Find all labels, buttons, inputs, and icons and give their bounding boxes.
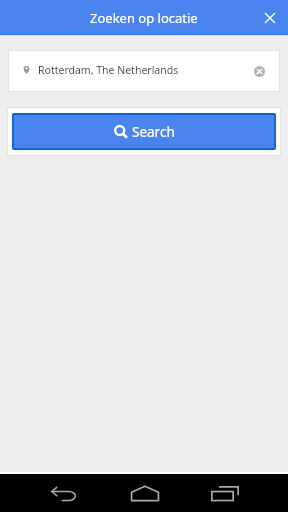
button[interactable]: Recent apps [192,474,258,512]
staticText: Rotterdam, The Netherlands [38,63,179,77]
staticText: Search [132,123,175,141]
button[interactable]: Back [31,474,97,512]
button[interactable]: Rotterdam, The Netherlands [9,51,279,91]
button[interactable]: Home [112,474,178,512]
button[interactable]: Close [256,4,284,32]
button[interactable]: Search [12,113,276,150]
staticText: Zoeken op locatie [90,9,198,27]
button[interactable]: Clear [247,59,271,83]
